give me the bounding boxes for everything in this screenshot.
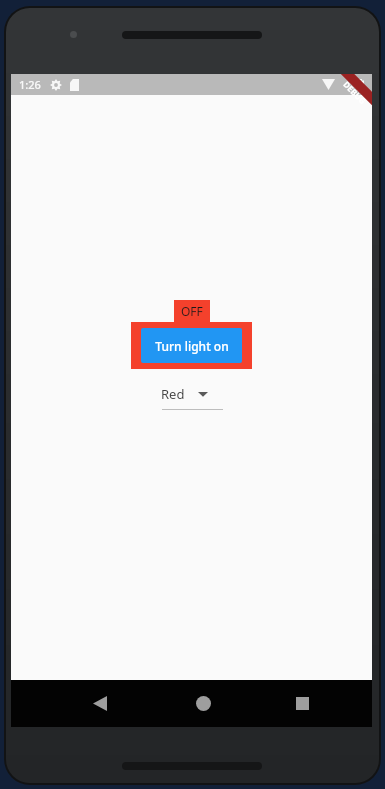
staticText: DEBUG bbox=[341, 79, 369, 106]
button[interactable]: Back bbox=[78, 680, 385, 727]
staticText: Red bbox=[161, 385, 185, 403]
button[interactable]: Recent apps bbox=[281, 680, 325, 727]
button[interactable]: Home bbox=[181, 680, 225, 727]
staticText: OFF bbox=[181, 303, 203, 319]
staticText: Turn light on bbox=[155, 338, 229, 354]
staticText: 1:26 bbox=[19, 77, 41, 92]
button[interactable]: Red bbox=[161, 385, 223, 410]
button[interactable]: Turn light on bbox=[131, 322, 252, 369]
